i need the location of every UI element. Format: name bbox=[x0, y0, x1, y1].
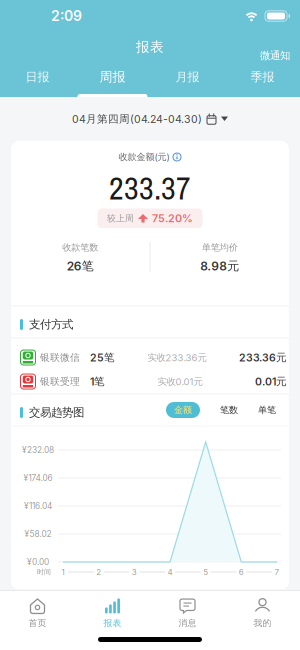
button[interactable]: 季报 bbox=[225, 57, 300, 97]
staticText: 26笔 bbox=[67, 258, 94, 273]
button[interactable]: 报表 bbox=[75, 591, 150, 635]
staticText: 2:09 bbox=[51, 7, 82, 24]
staticText: 日报 bbox=[25, 69, 49, 84]
staticText: ¥58.02 bbox=[24, 529, 51, 539]
staticText: ¥232.08 bbox=[22, 445, 54, 455]
staticText: ¥0.00 bbox=[27, 557, 49, 567]
staticText: 周报 bbox=[99, 69, 125, 85]
button[interactable]: 月报 bbox=[150, 57, 225, 97]
button[interactable]: 银联微信 bbox=[11, 345, 289, 369]
staticText: 1笔 bbox=[90, 375, 105, 388]
staticText: 4 bbox=[167, 567, 172, 577]
staticText: ¥116.04 bbox=[24, 501, 52, 511]
staticText: 较上周 bbox=[107, 213, 134, 224]
staticText: 2 bbox=[96, 567, 101, 577]
staticText: 75.20% bbox=[152, 212, 193, 225]
staticText: 首页 bbox=[28, 617, 46, 629]
staticText: 消息 bbox=[178, 617, 196, 629]
staticText: 实收233.36元 bbox=[147, 351, 206, 363]
staticText: 微通知 bbox=[260, 49, 290, 62]
button[interactable]: 单笔 bbox=[258, 404, 276, 416]
button[interactable]: 日报 bbox=[0, 57, 75, 97]
staticText: 支付方式 bbox=[29, 317, 73, 332]
staticText: 报表 bbox=[136, 38, 164, 55]
staticText: 季报 bbox=[250, 69, 274, 84]
staticText: 233.36元 bbox=[239, 351, 287, 364]
staticText: 25笔 bbox=[90, 351, 115, 364]
staticText: 收款笔数 bbox=[62, 242, 98, 253]
staticText: 233.37 bbox=[109, 166, 191, 209]
staticText: 实收0.01元 bbox=[157, 375, 202, 387]
staticText: 金额 bbox=[174, 404, 192, 416]
staticText: ¥174.06 bbox=[23, 473, 52, 483]
staticText: 笔数 bbox=[220, 404, 238, 416]
button[interactable]: 银联受理 bbox=[11, 369, 289, 393]
staticText: 04月第四周(04.24-04.30) bbox=[72, 112, 202, 126]
staticText: 7 bbox=[274, 567, 279, 577]
staticText: 5 bbox=[203, 567, 208, 577]
staticText: 我的 bbox=[253, 617, 271, 629]
button[interactable]: 我的 bbox=[225, 591, 300, 635]
staticText: 8.98元 bbox=[200, 258, 239, 273]
staticText: 报表 bbox=[103, 617, 121, 629]
button[interactable]: 消息 bbox=[150, 591, 225, 635]
staticText: 时间 bbox=[37, 568, 51, 576]
staticText: 0.01元 bbox=[255, 375, 287, 388]
button[interactable]: 04月第四周(04.24-04.30) bbox=[0, 97, 300, 141]
staticText: 1 bbox=[61, 567, 64, 577]
staticText: 交易趋势图 bbox=[29, 405, 84, 420]
staticText: 银联微信 bbox=[40, 351, 80, 364]
staticText: 3 bbox=[132, 567, 137, 577]
button[interactable]: 笔数 bbox=[220, 404, 238, 416]
button[interactable]: 金额 bbox=[166, 402, 200, 418]
staticText: 6 bbox=[239, 567, 244, 577]
button[interactable]: 首页 bbox=[0, 591, 75, 635]
staticText: 单笔 bbox=[258, 404, 276, 416]
staticText: 月报 bbox=[175, 69, 199, 84]
staticText: 收款金额(元) bbox=[118, 151, 169, 163]
staticText: 银联受理 bbox=[40, 375, 80, 388]
button[interactable]: 周报 bbox=[75, 57, 150, 97]
staticText: 单笔均价 bbox=[202, 242, 238, 253]
